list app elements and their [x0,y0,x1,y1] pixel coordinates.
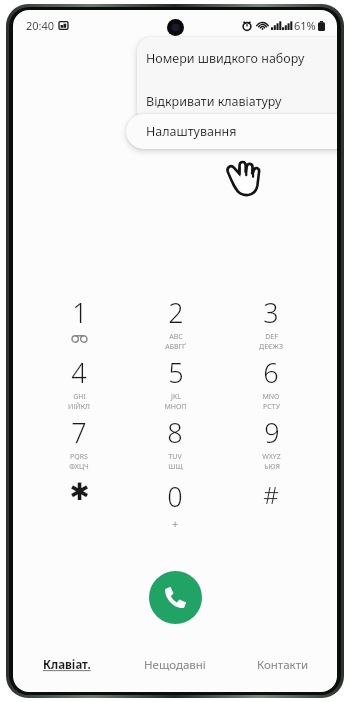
staticText: АБВГҐ [165,342,186,352]
staticText: Відкривати клавіатуру [146,93,282,110]
button[interactable]: 7 [31,412,127,472]
button[interactable]: Клавіат. [13,652,121,678]
button[interactable]: 9 [223,412,319,472]
button[interactable]: Call [149,571,202,624]
staticText: Контакти [257,657,309,673]
staticText: 2 [168,294,184,331]
staticText: PQRS [70,452,88,462]
staticText: Номери швидкого набору [146,50,305,67]
staticText: 8 [167,414,183,451]
staticText: ЬЮЯ [264,462,280,472]
staticText: Налаштування [146,123,237,140]
staticText: ШЩ [168,462,183,472]
button[interactable]: 5 [127,352,223,412]
staticText: GHI [73,392,86,402]
staticText: 0 [167,478,183,515]
staticText: Нещодавні [144,657,206,673]
staticText: DEF [265,332,278,342]
staticText: 20:40 [26,18,55,33]
button[interactable]: 2 [127,292,223,352]
button[interactable]: Налаштування [126,114,337,149]
staticText: ФХЦЧ [69,462,89,472]
staticText: Клавіат. [43,657,91,673]
staticText: # [263,478,279,511]
staticText: 6 [263,354,279,391]
staticText: WXYZ [262,452,281,462]
staticText: РСТУ [263,402,280,412]
button[interactable]: 1 [31,292,127,352]
staticText: 61% [294,18,316,33]
button[interactable]: 8 [127,412,223,472]
staticText: TUV [168,452,182,462]
staticText: 4 [71,354,87,391]
button[interactable]: Контакти [229,652,337,678]
staticText: ДЕЄЖЗ [259,342,283,352]
staticText: 5 [168,354,184,391]
staticText: ИІЙКЛ [68,402,90,412]
button[interactable]: 0 [127,472,223,530]
button[interactable]: Відкривати клавіатуру [137,80,337,123]
button[interactable]: # [223,472,319,530]
staticText: МНОП [164,402,187,412]
staticText: ✱ [69,478,90,506]
staticText: JKL [171,392,181,402]
staticText: + [172,516,179,530]
button[interactable]: Нещодавні [121,652,229,678]
staticText: 7 [71,414,87,451]
staticText: 1 [72,294,88,331]
staticText: ABC [169,332,183,342]
button[interactable]: 4 [31,352,127,412]
button[interactable]: 3 [223,292,319,352]
staticText: 9 [264,414,280,451]
staticText: MNO [262,392,280,402]
staticText: 3 [263,294,279,331]
button[interactable]: ✱ [31,472,127,530]
button[interactable]: Номери швидкого набору [137,37,337,80]
button[interactable]: 6 [223,352,319,412]
